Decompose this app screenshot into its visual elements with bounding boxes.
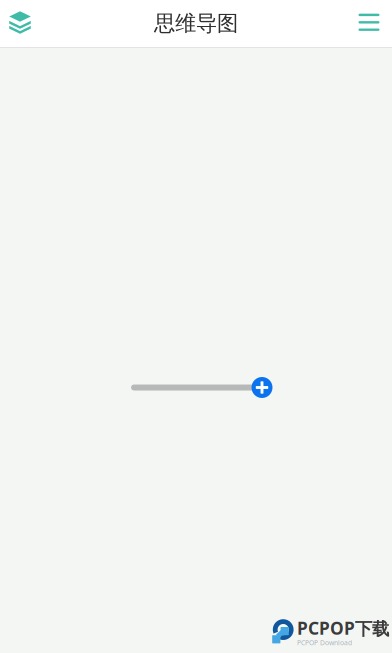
staticText: PCPOP下载: [297, 616, 389, 640]
button[interactable]: Layers: [0, 0, 40, 47]
button[interactable]: Zoom slider: [131, 384, 262, 390]
button[interactable]: Menu: [349, 0, 389, 47]
button[interactable]: Add node: [251, 377, 272, 398]
staticText: PCPOP Download: [297, 638, 352, 647]
staticText: 思维导图: [154, 10, 238, 37]
